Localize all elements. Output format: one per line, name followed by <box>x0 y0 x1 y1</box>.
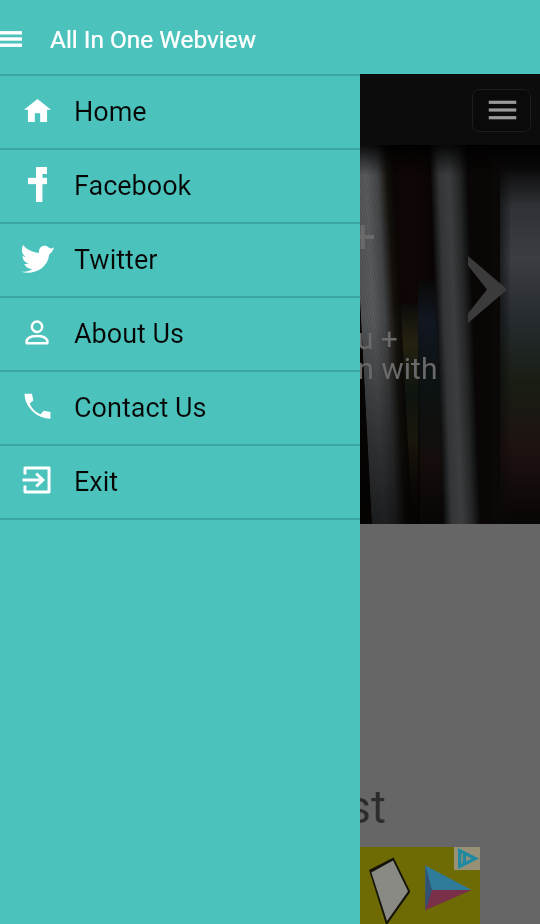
button[interactable]: Open navigation drawer <box>0 16 28 60</box>
staticText: All In One Webview <box>50 25 256 54</box>
staticText: About Us <box>74 318 185 350</box>
staticText: Find you + <box>166 209 376 263</box>
button[interactable]: Advertisement <box>360 847 480 924</box>
staticText: Twitter <box>74 244 158 276</box>
staticText: Facebook <box>74 170 192 202</box>
button[interactable]: Home <box>0 76 360 148</box>
button[interactable]: About Us <box>0 298 360 370</box>
staticText: Contact Us <box>74 392 207 424</box>
staticText: Latest <box>258 780 387 834</box>
button[interactable]: Site menu <box>472 89 531 132</box>
button[interactable]: Exit <box>0 446 360 518</box>
staticText: Home <box>74 96 147 128</box>
staticText: Design with <box>282 351 438 386</box>
button[interactable]: Twitter <box>0 224 360 296</box>
button[interactable]: Contact Us <box>0 372 360 444</box>
staticText: Find you + <box>261 321 398 356</box>
button[interactable]: Facebook <box>0 150 360 222</box>
staticText: Exit <box>74 466 119 498</box>
